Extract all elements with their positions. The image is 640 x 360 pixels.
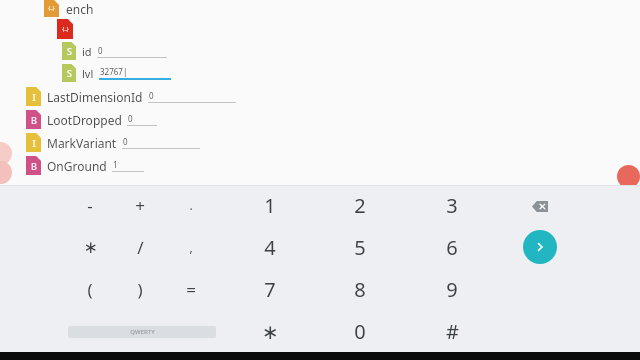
button[interactable]: 3 [431,185,473,225]
staticText: , [189,239,193,255]
staticText: 1 [264,192,276,219]
staticText: 6 [446,234,458,261]
button[interactable]: 7 [249,269,291,309]
button[interactable]: Edit [0,161,12,184]
staticText: 0 [123,136,128,147]
staticText: 5 [354,234,366,261]
button[interactable]: S [0,64,640,82]
staticText: {..} [48,5,55,12]
staticText: 32767| [100,66,128,77]
staticText: ) [137,278,143,301]
button[interactable]: / [119,227,161,267]
button[interactable]: Enter [523,230,557,264]
button[interactable]: ) [119,269,161,309]
button[interactable]: ∗ [249,311,291,351]
staticText: 8 [354,276,366,303]
staticText: {..} [62,26,69,33]
staticText: ench [66,1,94,17]
staticText: . [189,197,193,213]
staticText: 0 [128,113,133,124]
staticText: I [32,137,36,149]
staticText: ( [87,278,93,301]
staticText: 1 [113,159,118,170]
button[interactable]: 2 [339,185,381,225]
button[interactable]: {..} [0,0,640,17]
staticText: = [186,278,196,301]
staticText: 0 [98,45,103,56]
staticText: QWERTY [130,328,155,336]
staticText: ∗ [262,320,279,343]
staticText: MarkVariant [47,135,117,151]
button[interactable]: = [170,269,212,309]
button[interactable]: S [0,42,640,60]
staticText: LootDropped [47,112,122,128]
button[interactable]: # [431,311,473,351]
button[interactable]: 1 [249,185,291,225]
staticText: 4 [264,234,276,261]
staticText: I [32,91,36,103]
button[interactable]: I [0,133,640,152]
staticText: LastDimensionId [47,89,143,105]
staticText: B [31,114,37,126]
staticText: S [67,67,72,79]
staticText: 0 [149,90,154,101]
staticText: 3 [446,192,458,219]
staticText: 2 [354,192,366,219]
button[interactable]: I [0,87,640,106]
staticText: 0 [354,318,366,345]
button[interactable]: + [119,185,161,225]
staticText: id [82,44,92,59]
staticText: 9 [446,276,458,303]
staticText: S [67,45,72,57]
button[interactable]: , [170,227,212,267]
button[interactable]: - [69,185,111,225]
staticText: + [135,194,145,217]
button[interactable]: Delete [617,165,640,188]
button[interactable]: ∗ [69,227,111,267]
staticText: 7 [264,276,276,303]
staticText: lvl [82,66,94,81]
button[interactable]: . [170,185,212,225]
staticText: # [446,318,459,345]
staticText: ∗ [83,237,98,257]
staticText: OnGround [47,158,107,174]
staticText: B [31,160,37,172]
button[interactable]: 4 [249,227,291,267]
button[interactable]: 0 [339,311,381,351]
button[interactable]: B [0,156,640,175]
button[interactable]: 9 [431,269,473,309]
button[interactable]: Save [0,142,12,165]
button[interactable]: 6 [431,227,473,267]
button[interactable]: {..} [0,19,640,39]
button[interactable]: 8 [339,269,381,309]
button[interactable]: 5 [339,227,381,267]
button[interactable]: QWERTY [68,326,216,338]
staticText: / [137,236,144,259]
staticText: - [87,194,93,217]
button[interactable]: Backspace [518,187,562,225]
button[interactable]: ( [69,269,111,309]
button[interactable]: B [0,110,640,129]
